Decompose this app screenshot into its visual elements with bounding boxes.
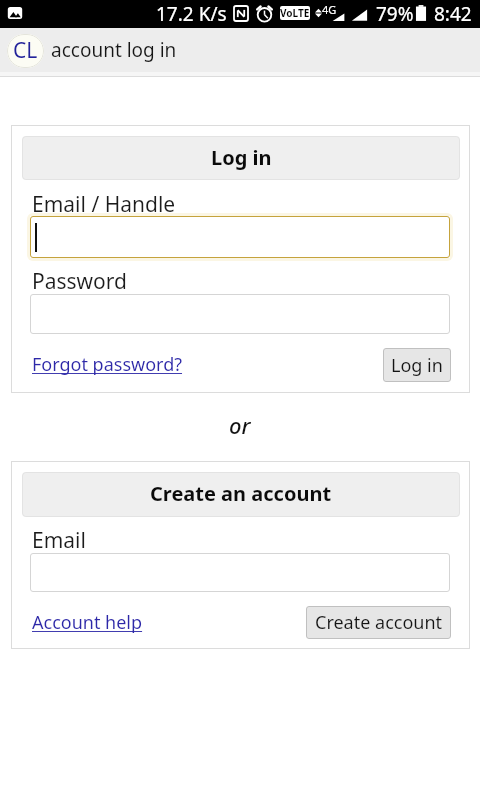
staticText: Create account bbox=[315, 610, 443, 635]
staticText: Account help bbox=[32, 610, 143, 635]
staticText: VoLTE bbox=[280, 6, 310, 20]
button[interactable]: Forgot password? bbox=[32, 352, 183, 377]
staticText: 4G bbox=[322, 2, 337, 17]
button[interactable]: Log in bbox=[383, 348, 451, 382]
button[interactable]: text input bbox=[30, 216, 450, 258]
staticText: Forgot password? bbox=[32, 352, 183, 377]
staticText: Email / Handle bbox=[32, 190, 176, 219]
staticText: Email bbox=[32, 526, 86, 555]
staticText: account log in bbox=[51, 37, 177, 63]
button[interactable]: text input bbox=[30, 553, 450, 592]
button[interactable]: Create account bbox=[306, 606, 451, 639]
staticText: 17.2 K/s bbox=[156, 1, 227, 27]
staticText: 79% bbox=[376, 1, 414, 27]
staticText: Log in bbox=[391, 353, 443, 378]
staticText: Log in bbox=[211, 144, 272, 171]
staticText: or bbox=[229, 410, 251, 440]
button[interactable]: text input bbox=[30, 294, 450, 334]
staticText: 8:42 bbox=[434, 1, 472, 27]
staticText: Create an account bbox=[150, 480, 332, 507]
button[interactable]: Account help bbox=[32, 610, 143, 635]
button[interactable]: craigslist home bbox=[7, 34, 44, 68]
staticText: Password bbox=[32, 267, 127, 296]
staticText: CL bbox=[13, 36, 38, 65]
